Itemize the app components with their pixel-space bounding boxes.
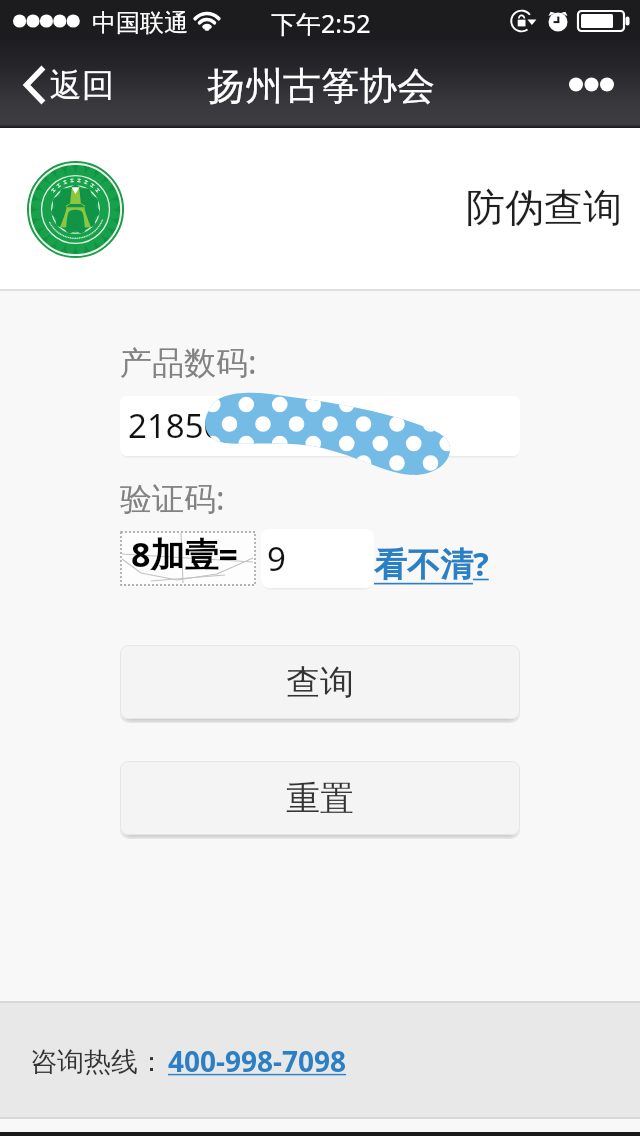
staticText: 验证码: (120, 476, 225, 520)
staticText: 重置 (286, 777, 354, 820)
staticText: 防伪查询 (466, 183, 622, 232)
button[interactable]: 21850 (120, 396, 520, 456)
staticText: 查询 (286, 661, 354, 704)
button[interactable]: 重置 (120, 761, 520, 835)
staticText: 产品数码: (120, 340, 257, 384)
button[interactable]: 查询 (120, 645, 520, 719)
staticText: 中国联通 (92, 8, 188, 38)
button[interactable]: 看不清? (374, 541, 489, 586)
button[interactable]: 9 (261, 529, 374, 588)
button[interactable]: 400-998-7098 (168, 1041, 347, 1079)
staticText: 看不清? (374, 541, 489, 586)
staticText: 返回 (50, 65, 114, 105)
staticText: 8加壹= (131, 531, 238, 577)
button[interactable]: 返回 (13, 57, 124, 113)
staticText: 下午2:52 (271, 6, 371, 40)
staticText: 扬州古筝协会 (207, 62, 435, 110)
staticText: 咨询热线： (30, 1045, 165, 1079)
staticText: 21850 (128, 403, 223, 448)
staticText: 400-998-7098 (168, 1042, 347, 1080)
staticText: 9 (267, 536, 286, 581)
button[interactable]: More options (556, 61, 627, 108)
